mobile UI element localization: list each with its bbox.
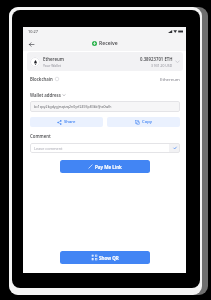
staticText: Wallet address [30,92,61,98]
button[interactable]: Blockchain [30,74,180,83]
button[interactable]: Pay Me Link [60,160,150,173]
button[interactable]: Back [25,38,37,50]
button[interactable]: Copy [107,117,180,127]
staticText: 0.38923701 ETH [140,56,173,62]
staticText: Copy [142,119,152,125]
staticText: Show QR [99,255,119,261]
button[interactable]: Leave comment [30,143,180,153]
staticText: Your Wallet [43,63,62,68]
staticText: Comment [30,133,51,139]
button[interactable]: Wallet address [30,92,66,98]
button[interactable]: Show QR [60,251,150,264]
button[interactable]: Share [30,117,103,127]
staticText: 10:27 [28,29,38,34]
button[interactable]: bc1qxy2kgdygjrsqtzq2n0yrf2493p83kkfjhx0w… [30,101,180,112]
staticText: 3 931.20 USD [151,63,173,68]
staticText: Receive [99,40,118,47]
staticText: Leave comment [34,146,63,151]
staticText: Ethereum [43,56,65,62]
staticText: Share [64,119,76,125]
staticText: Pay Me Link [95,164,122,170]
staticText: Blockchain [30,76,53,82]
button[interactable]: Ethereum [27,52,183,71]
staticText: Ethereum [160,76,180,82]
staticText: bc1qxy2kgdygjrsqtzq2n0yrf2493p83kkfjhx0w… [34,104,112,109]
